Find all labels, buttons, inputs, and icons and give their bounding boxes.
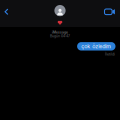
staticText: çok özledim	[81, 43, 111, 50]
staticText: Bugün 04:47	[50, 34, 70, 38]
button[interactable]: Back	[0, 0, 16, 21]
staticText: İletildi	[105, 52, 115, 56]
button[interactable]: FaceTime	[95, 0, 120, 21]
staticText: iMessage	[52, 30, 68, 34]
